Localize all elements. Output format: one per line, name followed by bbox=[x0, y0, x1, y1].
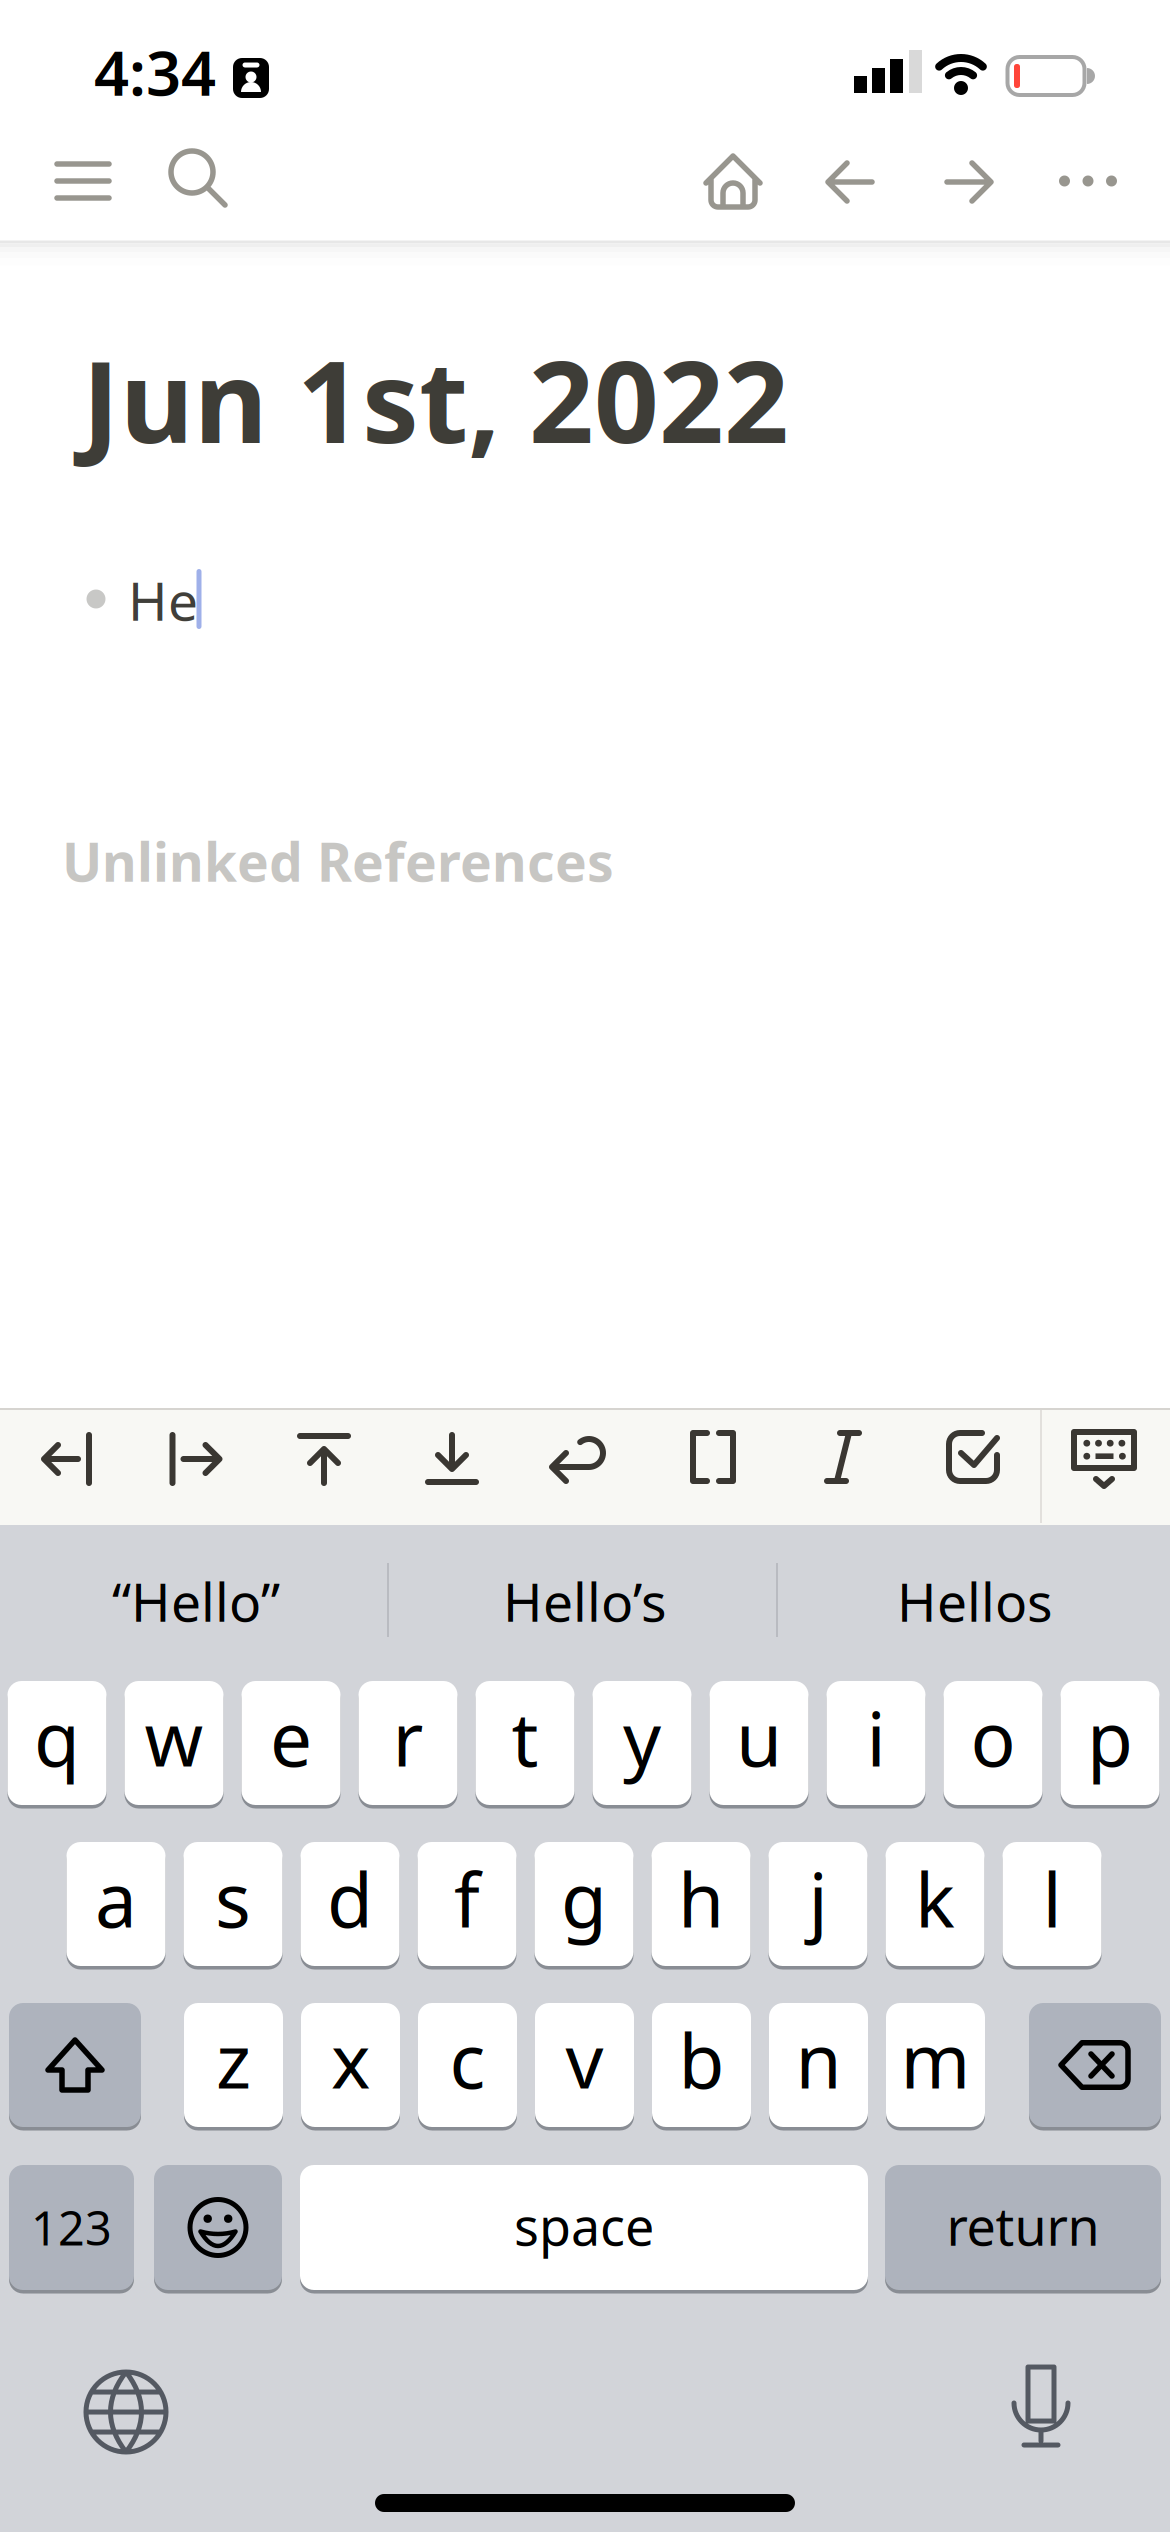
button[interactable]: Emoji bbox=[154, 2165, 282, 2294]
staticText: b bbox=[678, 2010, 724, 2109]
button[interactable]: u bbox=[709, 1681, 808, 1809]
button[interactable]: Numbers bbox=[9, 2165, 134, 2294]
staticText: k bbox=[915, 1849, 955, 1948]
button[interactable]: return bbox=[885, 2165, 1161, 2294]
button[interactable]: Indent bbox=[169, 1433, 222, 1485]
button[interactable]: j bbox=[768, 1842, 867, 1970]
staticText: c bbox=[449, 2010, 485, 2109]
button[interactable]: Italic bbox=[825, 1430, 861, 1484]
staticText: He bbox=[128, 565, 198, 635]
staticText: Hello’s bbox=[503, 1566, 667, 1636]
staticText: Jun 1st, 2022 bbox=[82, 324, 789, 474]
staticText: r bbox=[392, 1688, 423, 1787]
button[interactable]: Menu bbox=[56, 154, 110, 208]
staticText: q bbox=[34, 1688, 80, 1787]
staticText: w bbox=[144, 1688, 203, 1787]
button[interactable]: Delete bbox=[1029, 2003, 1161, 2131]
staticText: j bbox=[808, 1849, 827, 1948]
button[interactable]: Dictate bbox=[1011, 2365, 1071, 2451]
staticText: t bbox=[511, 1688, 538, 1787]
staticText: space bbox=[514, 2191, 654, 2260]
button[interactable]: z bbox=[184, 2003, 283, 2131]
button[interactable]: k bbox=[885, 1842, 984, 1970]
button[interactable]: w bbox=[124, 1681, 223, 1809]
staticText: return bbox=[946, 2191, 1099, 2260]
button[interactable]: e bbox=[241, 1681, 340, 1809]
staticText: x bbox=[331, 2010, 370, 2109]
button[interactable]: h bbox=[651, 1842, 750, 1970]
button[interactable]: Brackets bbox=[689, 1430, 737, 1484]
staticText: s bbox=[215, 1849, 251, 1948]
button[interactable]: Dismiss keyboard bbox=[1071, 1429, 1137, 1489]
button[interactable]: m bbox=[886, 2003, 985, 2131]
button[interactable]: Forward bbox=[945, 160, 993, 204]
button[interactable]: p bbox=[1060, 1681, 1159, 1809]
button[interactable]: Move down bbox=[426, 1433, 478, 1485]
button[interactable]: Search bbox=[166, 147, 228, 209]
button[interactable]: d bbox=[300, 1842, 399, 1970]
staticText: u bbox=[736, 1688, 782, 1787]
staticText: l bbox=[1042, 1849, 1061, 1948]
button[interactable]: Shift bbox=[9, 2003, 141, 2131]
button[interactable]: g bbox=[534, 1842, 633, 1970]
button[interactable]: Back bbox=[826, 160, 874, 204]
staticText: h bbox=[678, 1849, 724, 1948]
button[interactable]: Checkbox bbox=[946, 1430, 1000, 1484]
button[interactable]: x bbox=[301, 2003, 400, 2131]
button[interactable]: Move up bbox=[298, 1433, 350, 1485]
button[interactable]: q bbox=[7, 1681, 106, 1809]
button[interactable]: Hellos bbox=[785, 1556, 1165, 1646]
button[interactable]: More bbox=[1059, 174, 1123, 188]
button[interactable]: Outdent bbox=[42, 1433, 92, 1485]
button[interactable]: space bbox=[300, 2165, 868, 2294]
staticText: a bbox=[95, 1849, 137, 1948]
button[interactable]: c bbox=[418, 2003, 517, 2131]
staticText: Hellos bbox=[897, 1566, 1053, 1636]
staticText: f bbox=[454, 1849, 480, 1948]
staticText: i bbox=[866, 1688, 885, 1787]
button[interactable]: v bbox=[535, 2003, 634, 2131]
button[interactable]: “Hello” bbox=[6, 1556, 386, 1646]
staticText: 4:34 bbox=[94, 31, 216, 113]
staticText: m bbox=[900, 2010, 970, 2109]
staticText: p bbox=[1087, 1688, 1133, 1787]
button[interactable]: o bbox=[943, 1681, 1042, 1809]
staticText: Unlinked References bbox=[62, 826, 614, 896]
button[interactable]: i bbox=[826, 1681, 925, 1809]
staticText: g bbox=[561, 1849, 607, 1948]
staticText: n bbox=[795, 2010, 841, 2109]
staticText: o bbox=[970, 1688, 1015, 1787]
button[interactable]: l bbox=[1002, 1842, 1101, 1970]
button[interactable]: Home bbox=[704, 153, 762, 211]
button[interactable]: f bbox=[417, 1842, 516, 1970]
staticText: y bbox=[623, 1688, 661, 1787]
button[interactable]: s bbox=[183, 1842, 282, 1970]
button[interactable]: a bbox=[66, 1842, 165, 1970]
staticText: e bbox=[270, 1688, 312, 1787]
button[interactable]: n bbox=[769, 2003, 868, 2131]
button[interactable]: Hello’s bbox=[395, 1556, 775, 1646]
staticText: 123 bbox=[31, 2196, 112, 2258]
button[interactable]: Insert line break bbox=[549, 1435, 607, 1481]
staticText: d bbox=[327, 1849, 373, 1948]
button[interactable]: Next keyboard bbox=[84, 2370, 168, 2454]
staticText: z bbox=[216, 2010, 251, 2109]
button[interactable]: t bbox=[475, 1681, 574, 1809]
staticText: “Hello” bbox=[112, 1566, 280, 1636]
button[interactable]: b bbox=[652, 2003, 751, 2131]
staticText: v bbox=[565, 2010, 603, 2109]
button[interactable]: y bbox=[592, 1681, 691, 1809]
button[interactable]: r bbox=[358, 1681, 457, 1809]
